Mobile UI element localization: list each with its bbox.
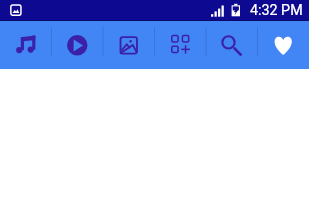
button[interactable]: Favourites — [257, 21, 309, 69]
button[interactable]: Play — [51, 21, 102, 69]
button[interactable]: Photos — [102, 21, 153, 69]
button[interactable]: Add — [153, 21, 205, 69]
staticText: 4:32 PM — [250, 2, 303, 19]
button[interactable]: Music — [0, 21, 51, 69]
button[interactable]: Search — [205, 21, 257, 69]
